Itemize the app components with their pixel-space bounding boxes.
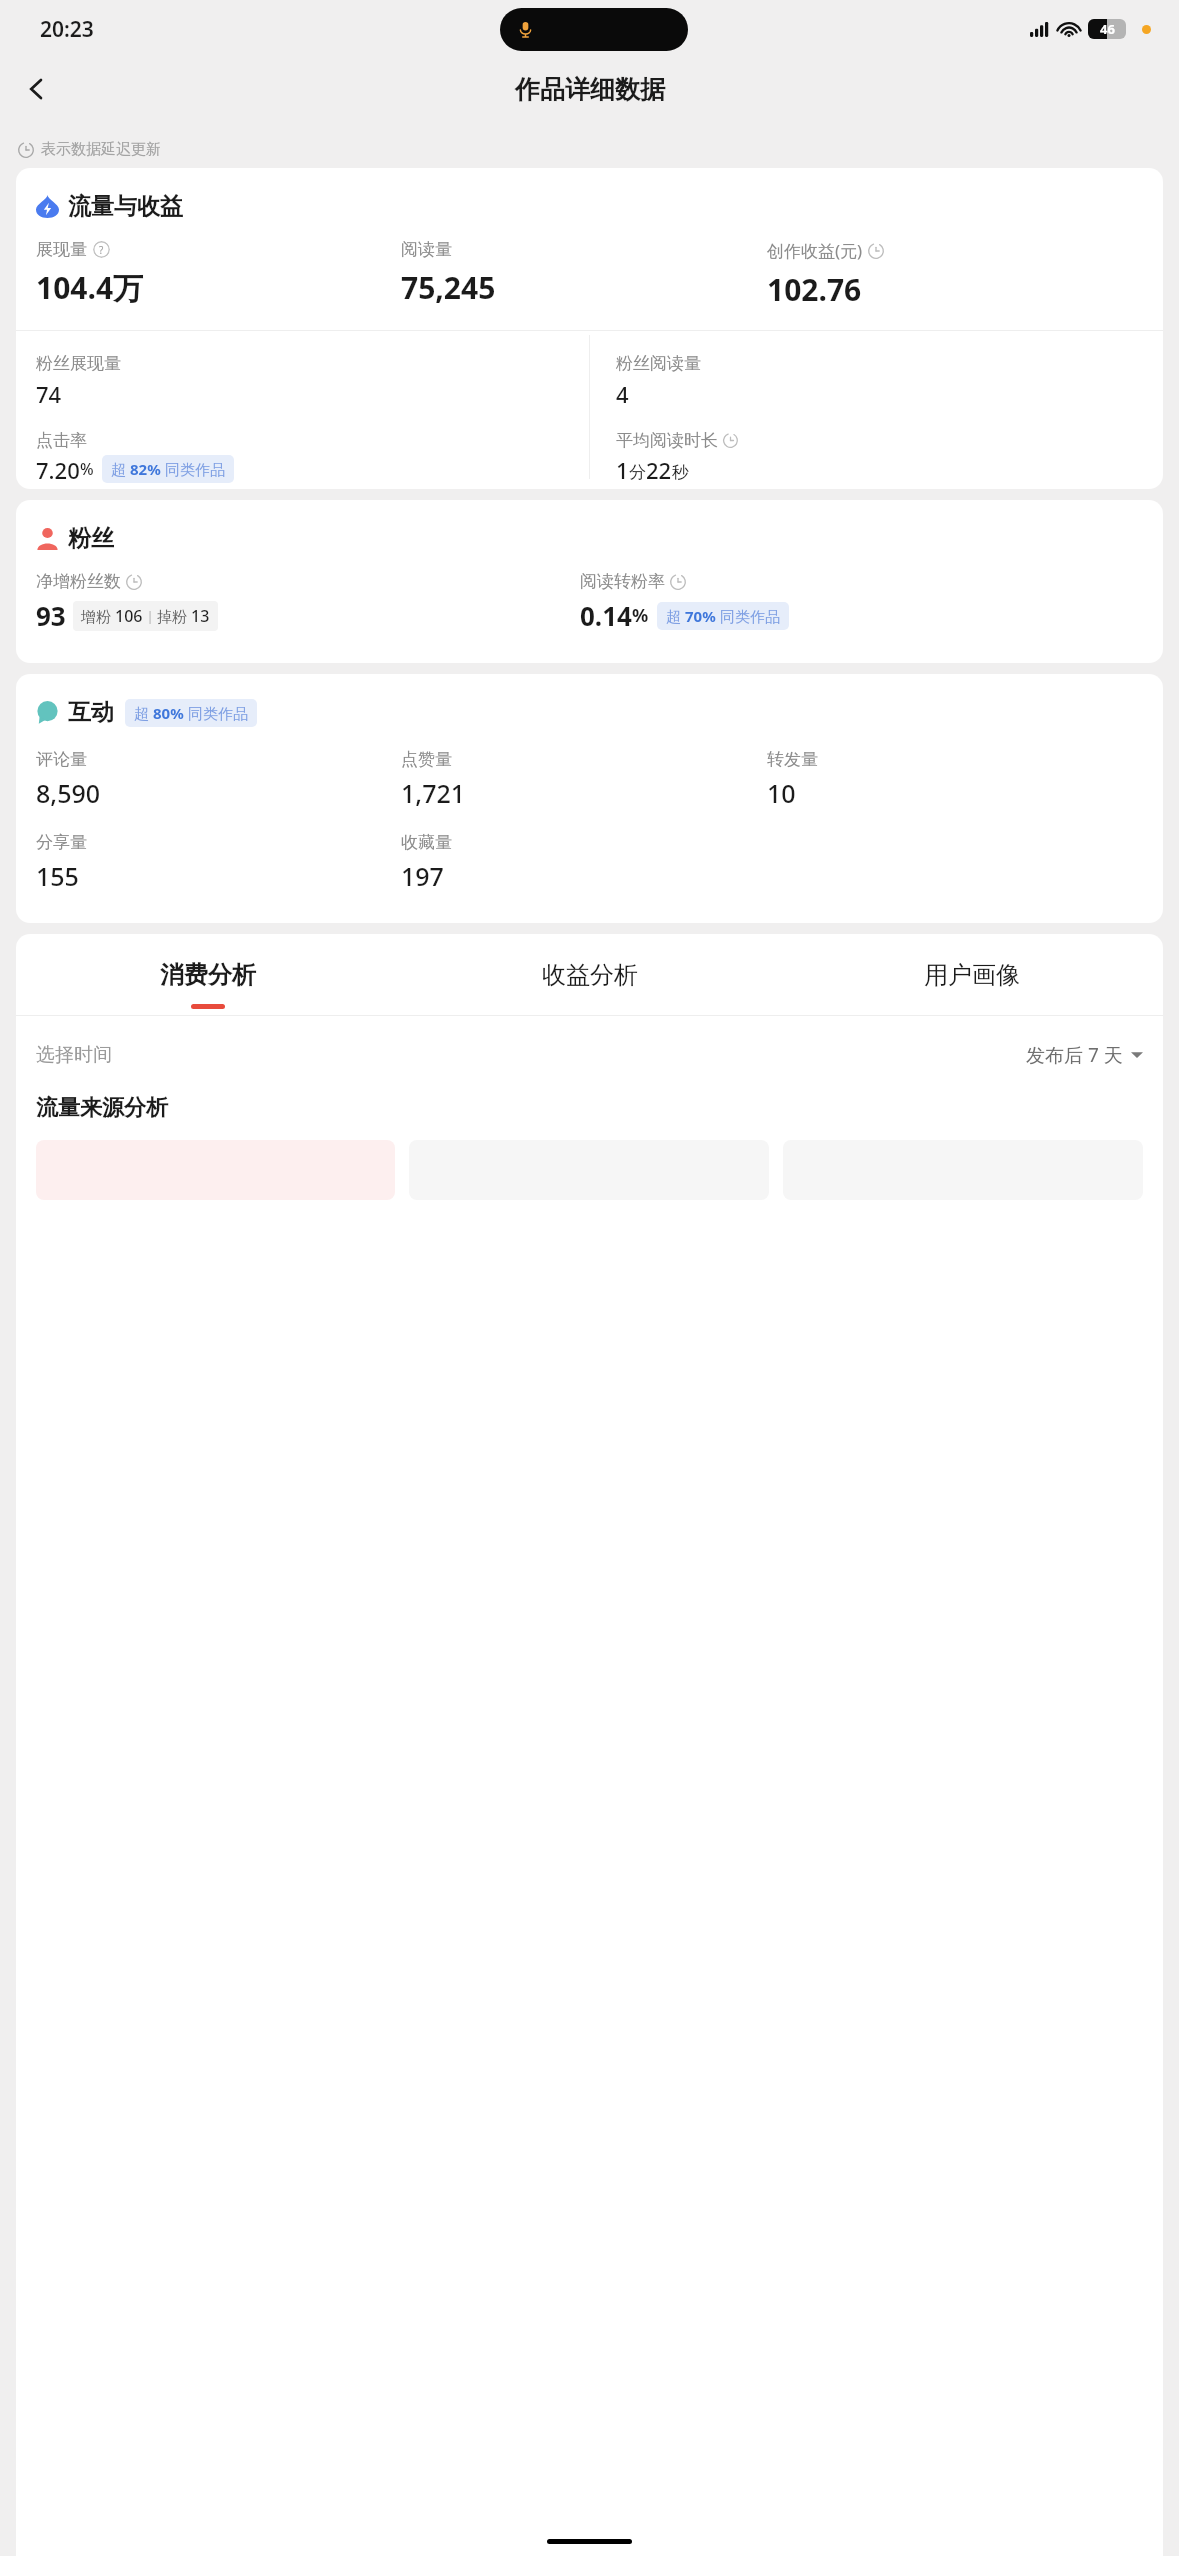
- staticText: 22: [646, 455, 672, 483]
- staticText: 超: [111, 459, 130, 479]
- staticText: 流量来源分析: [36, 1094, 168, 1122]
- staticText: %: [632, 603, 649, 628]
- staticText: 102.76: [767, 269, 862, 310]
- staticText: 消费分析: [160, 960, 256, 990]
- staticText: 同类作品: [184, 703, 248, 723]
- staticText: 1: [616, 455, 629, 483]
- staticText: 10: [767, 776, 796, 810]
- staticText: 82%: [130, 459, 161, 479]
- button[interactable]: Back: [14, 66, 60, 112]
- staticText: 46: [1100, 20, 1115, 38]
- staticText: 7.20: [36, 455, 80, 483]
- staticText: 分享量: [36, 832, 87, 853]
- staticText: 点赞量: [401, 749, 452, 770]
- staticText: 发布后 7 天: [1026, 1042, 1123, 1068]
- staticText: 197: [401, 859, 444, 893]
- staticText: 74: [36, 379, 62, 409]
- staticText: 4: [616, 379, 629, 409]
- staticText: 同类作品: [716, 606, 780, 626]
- staticText: 表示数据延迟更新: [41, 140, 161, 159]
- button[interactable]: 互动: [16, 674, 1163, 923]
- staticText: 创作收益(元): [767, 239, 863, 262]
- staticText: 粉丝: [68, 524, 114, 553]
- staticText: 粉丝展现量: [36, 353, 121, 374]
- staticText: %: [80, 458, 94, 480]
- staticText: 1,721: [401, 776, 466, 810]
- button[interactable]: 发布后 7 天: [1026, 1042, 1143, 1068]
- staticText: 平均阅读时长: [616, 430, 718, 451]
- staticText: 点击率: [36, 430, 87, 451]
- button[interactable]: 收益分析: [399, 960, 781, 1015]
- button[interactable]: 用户画像: [781, 960, 1163, 1015]
- button[interactable]: 消费分析: [16, 960, 399, 1015]
- staticText: 13: [191, 605, 210, 627]
- staticText: 104.4万: [36, 267, 144, 308]
- staticText: 粉丝阅读量: [616, 353, 701, 374]
- staticText: 155: [36, 859, 79, 893]
- staticText: ?: [99, 243, 104, 257]
- staticText: 评论量: [36, 749, 87, 770]
- staticText: 选择时间: [36, 1043, 112, 1067]
- staticText: |: [143, 607, 157, 625]
- staticText: 收益分析: [542, 960, 638, 990]
- staticText: 阅读量: [401, 239, 452, 260]
- staticText: 0.14: [580, 598, 632, 633]
- staticText: 20:23: [40, 15, 94, 44]
- staticText: 作品详细数据: [515, 74, 665, 105]
- button[interactable]: 粉丝: [16, 500, 1163, 663]
- staticText: 超: [134, 703, 153, 723]
- staticText: 8,590: [36, 776, 101, 810]
- staticText: 分: [629, 462, 646, 483]
- staticText: 增粉: [81, 606, 115, 626]
- staticText: 互动: [68, 698, 114, 727]
- staticText: 转发量: [767, 749, 818, 770]
- staticText: 净增粉丝数: [36, 571, 121, 592]
- staticText: 106: [115, 605, 143, 627]
- staticText: 阅读转粉率: [580, 571, 665, 592]
- staticText: 收藏量: [401, 832, 452, 853]
- staticText: 掉粉: [157, 606, 191, 626]
- staticText: 75,245: [401, 267, 496, 308]
- staticText: 秒: [672, 462, 689, 483]
- staticText: 93: [36, 598, 66, 633]
- button[interactable]: 流量与收益: [16, 168, 1163, 489]
- staticText: 80%: [153, 703, 184, 723]
- staticText: 超: [666, 606, 685, 626]
- staticText: 展现量: [36, 239, 87, 260]
- staticText: 同类作品: [161, 459, 225, 479]
- staticText: 流量与收益: [68, 192, 183, 221]
- staticText: 70%: [685, 606, 716, 626]
- staticText: 用户画像: [924, 960, 1020, 990]
